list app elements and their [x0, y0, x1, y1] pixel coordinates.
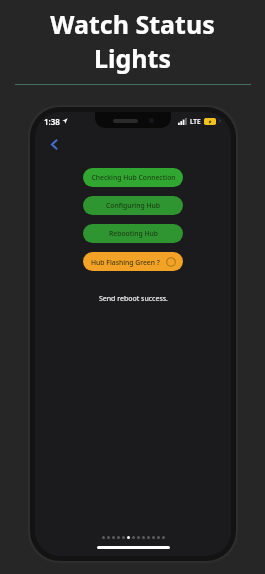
staticText: LTE: [190, 117, 201, 126]
staticText: Rebooting Hub: [109, 229, 158, 238]
button[interactable]: Back: [39, 133, 69, 155]
staticText: Lights: [94, 41, 171, 75]
staticText: Hub Flashing Green ?: [91, 258, 160, 267]
staticText: Configuring Hub: [106, 201, 160, 210]
button[interactable]: Checking Hub Connection: [83, 168, 183, 187]
button[interactable]: Configuring Hub: [83, 196, 183, 215]
staticText: Send reboot success.: [99, 294, 168, 304]
button[interactable]: Hub Flashing Green ?: [83, 252, 183, 271]
staticText: 1:38: [44, 116, 60, 127]
staticText: Checking Hub Connection: [91, 173, 176, 182]
staticText: Watch Status: [50, 7, 215, 41]
button[interactable]: Rebooting Hub: [83, 224, 183, 243]
